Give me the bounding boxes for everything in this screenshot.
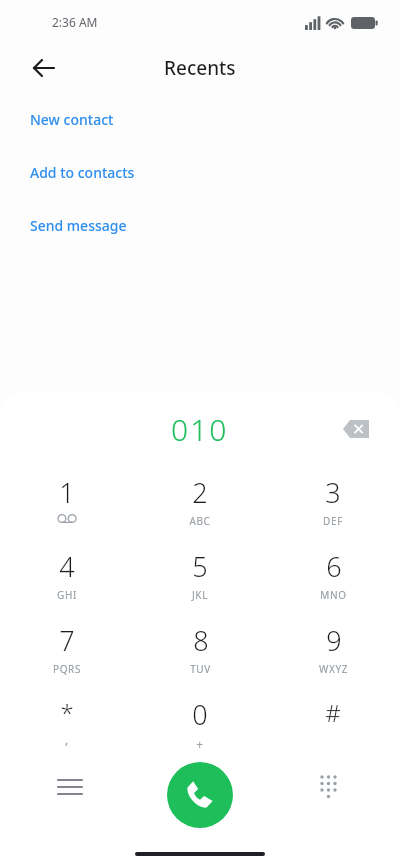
button[interactable]: 8 <box>156 622 244 684</box>
button[interactable]: New contact <box>30 110 114 163</box>
button[interactable]: Menu <box>46 763 94 811</box>
staticText: 2 <box>192 474 208 511</box>
button[interactable]: 4 <box>23 548 111 610</box>
button[interactable]: Back <box>20 44 68 92</box>
staticText: 8 <box>193 622 209 659</box>
button[interactable]: 9 <box>289 622 377 684</box>
staticText: TUV <box>190 662 211 676</box>
staticText: 010 <box>171 409 229 450</box>
staticText: * <box>60 696 74 729</box>
staticText: 4 <box>59 548 75 585</box>
staticText: + <box>196 736 204 752</box>
button[interactable]: 6 <box>289 548 377 610</box>
button[interactable]: Backspace <box>332 405 380 453</box>
staticText: 9 <box>326 622 342 659</box>
staticText: 0 <box>192 696 208 733</box>
staticText: JKL <box>192 588 208 602</box>
button[interactable]: 5 <box>156 548 244 610</box>
button[interactable]: 3 <box>289 474 377 536</box>
button[interactable]: Add to contacts <box>30 163 135 216</box>
button[interactable]: 2 <box>156 474 244 536</box>
button[interactable]: Keypad <box>306 763 354 811</box>
staticText: 6 <box>326 548 342 585</box>
staticText: 2:36 AM <box>52 14 98 30</box>
staticText: 3 <box>325 474 341 511</box>
button[interactable]: 0 <box>156 696 244 758</box>
staticText: GHI <box>57 588 77 602</box>
staticText: # <box>325 696 341 729</box>
staticText: MNO <box>320 588 347 602</box>
staticText: Send message <box>30 216 127 235</box>
staticText: 7 <box>59 622 75 659</box>
button[interactable]: * <box>23 696 111 758</box>
staticText: PQRS <box>53 662 81 676</box>
button[interactable]: 1 <box>23 474 111 536</box>
staticText: 1 <box>59 474 75 511</box>
button[interactable]: # <box>289 696 377 758</box>
staticText: , <box>65 731 69 747</box>
button[interactable]: Send message <box>30 216 127 269</box>
button[interactable]: Call <box>167 762 233 828</box>
button[interactable]: 7 <box>23 622 111 684</box>
staticText: Add to contacts <box>30 163 135 182</box>
staticText: WXYZ <box>319 662 348 676</box>
staticText: New contact <box>30 110 114 129</box>
staticText: DEF <box>323 514 343 528</box>
staticText: 5 <box>192 548 208 585</box>
staticText: ABC <box>189 514 211 528</box>
staticText: Recents <box>164 55 236 81</box>
